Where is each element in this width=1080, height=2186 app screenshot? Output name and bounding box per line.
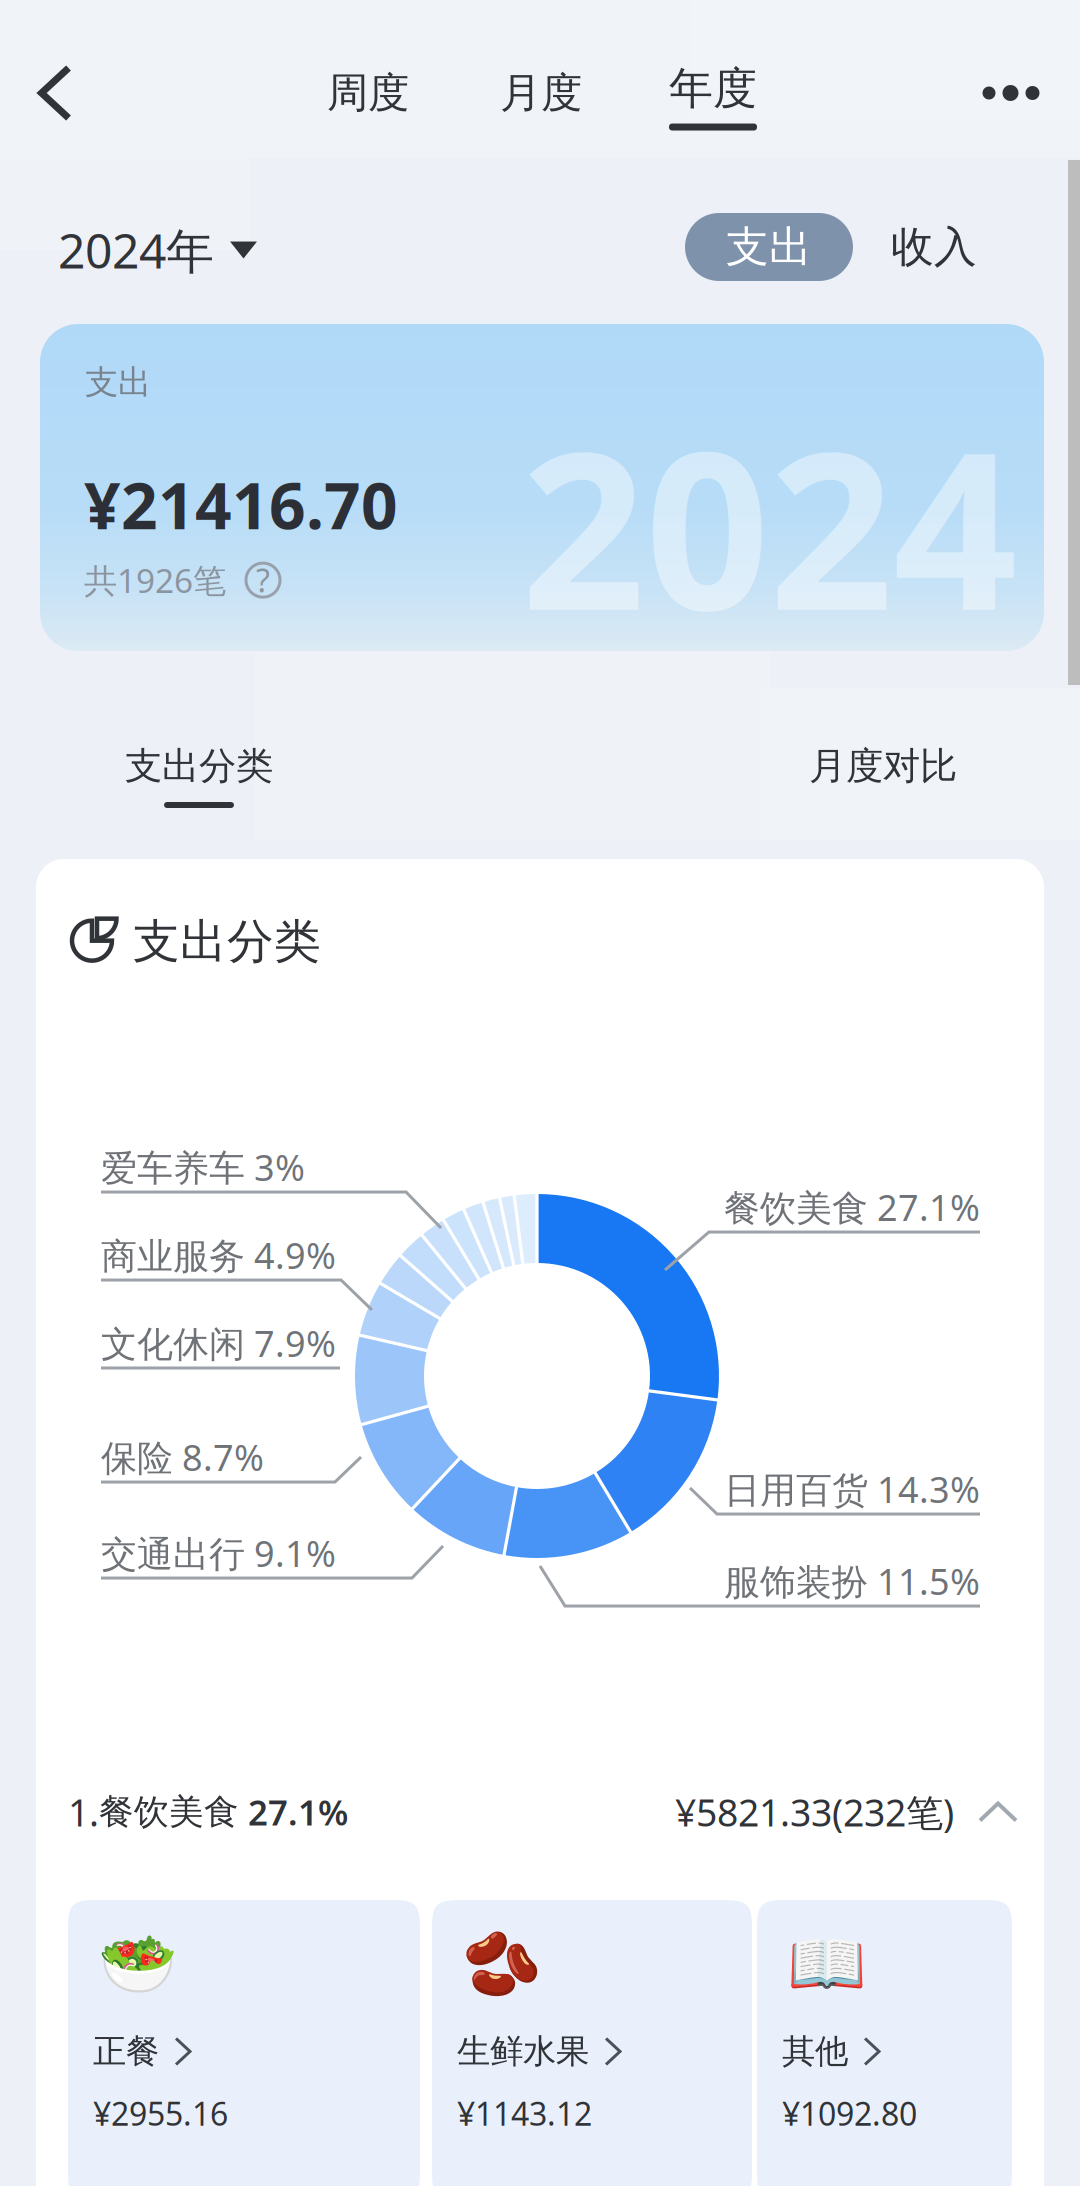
staticText: 支出 bbox=[726, 221, 812, 273]
staticText: ¥1143.12 bbox=[457, 2092, 592, 2134]
staticText: 交通出行 9.1% bbox=[101, 1529, 336, 1577]
staticText: 🥗 bbox=[98, 1928, 178, 2001]
staticText: 2024 bbox=[521, 381, 1017, 670]
staticText: 📖 bbox=[787, 1928, 867, 2001]
staticText: ¥2955.16 bbox=[93, 2092, 228, 2134]
button[interactable]: 支出 bbox=[685, 213, 853, 281]
staticText: 支出 bbox=[85, 362, 151, 403]
staticText: 月度 bbox=[500, 68, 582, 118]
staticText: 月度对比 bbox=[809, 743, 957, 789]
staticText: 周度 bbox=[327, 68, 409, 118]
staticText: ¥1092.80 bbox=[782, 2092, 917, 2134]
button[interactable]: 1. bbox=[68, 1772, 1018, 1852]
button[interactable]: 收入 bbox=[864, 213, 1004, 281]
button[interactable]: 月度 bbox=[476, 45, 606, 141]
staticText: 餐饮美食 bbox=[99, 1791, 239, 1833]
staticText: 收入 bbox=[891, 221, 977, 273]
button[interactable]: 月度对比 bbox=[763, 738, 1003, 834]
staticText: 其他 bbox=[782, 2031, 848, 2072]
staticText: 共1926笔 bbox=[84, 558, 226, 602]
button[interactable]: 周度 bbox=[303, 45, 433, 141]
staticText: 爱车养车 3% bbox=[101, 1143, 305, 1191]
staticText: 27.1% bbox=[239, 1789, 348, 1835]
staticText: 商业服务 4.9% bbox=[101, 1231, 336, 1279]
staticText: 年度 bbox=[669, 61, 757, 115]
staticText: 生鲜水果 bbox=[457, 2031, 589, 2072]
button[interactable]: 🥗 bbox=[68, 1900, 420, 2186]
button[interactable]: 📖 bbox=[757, 1900, 1012, 2186]
staticText: 保险 8.7% bbox=[101, 1433, 264, 1481]
button[interactable]: 🫘 bbox=[432, 1900, 752, 2186]
staticText: 支出分类 bbox=[133, 913, 321, 970]
staticText: ? bbox=[256, 559, 270, 601]
staticText: 文化休闲 7.9% bbox=[101, 1319, 336, 1367]
button[interactable]: 年度 bbox=[643, 46, 783, 146]
button[interactable]: 支出分类 bbox=[79, 738, 319, 834]
staticText: 餐饮美食 27.1% bbox=[724, 1183, 980, 1231]
staticText: 正餐 bbox=[93, 2031, 159, 2072]
staticText: 🫘 bbox=[462, 1928, 542, 2001]
button[interactable]: Back bbox=[0, 38, 110, 148]
staticText: 日用百货 14.3% bbox=[724, 1465, 980, 1513]
staticText: 2024年 bbox=[58, 218, 214, 282]
staticText: ¥5821.33(232笔) bbox=[675, 1787, 954, 1837]
button[interactable]: 2024年 bbox=[58, 210, 266, 290]
staticText: ¥21416.70 bbox=[84, 462, 398, 547]
button[interactable]: More options bbox=[956, 43, 1066, 143]
staticText: 1. bbox=[68, 1787, 99, 1837]
staticText: 支出分类 bbox=[125, 743, 273, 789]
staticText: 服饰装扮 11.5% bbox=[724, 1557, 980, 1605]
